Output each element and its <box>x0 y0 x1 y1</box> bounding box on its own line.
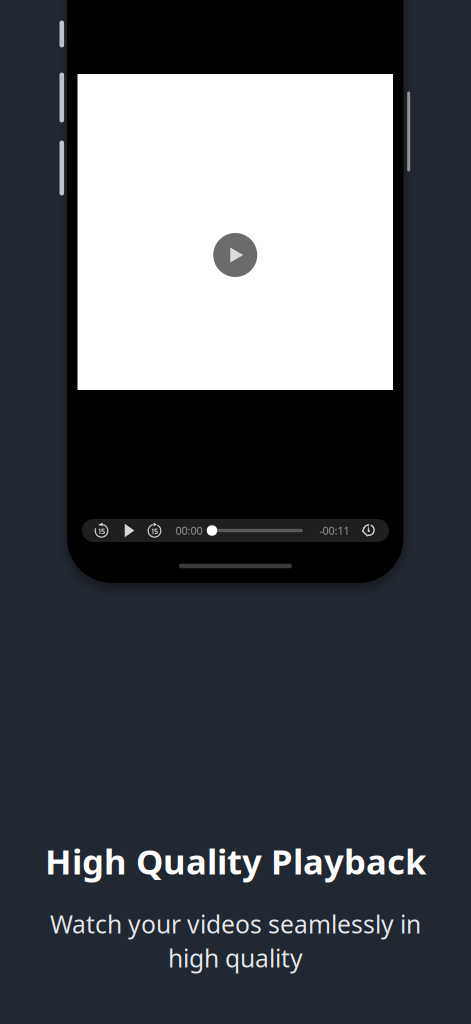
staticText: Watch your videos seamlessly in <box>50 907 421 941</box>
staticText: high quality <box>168 941 303 975</box>
staticText: -00:11 <box>319 523 349 538</box>
button[interactable]: Playback speed <box>358 519 379 542</box>
button[interactable]: Play video <box>213 233 257 277</box>
staticText: High Quality Playback <box>45 837 426 885</box>
staticText: 00:00 <box>175 523 202 538</box>
button[interactable]: Skip back 15 seconds <box>90 519 113 542</box>
button[interactable]: Skip forward 15 seconds <box>143 519 166 542</box>
button[interactable]: Play <box>118 519 141 542</box>
